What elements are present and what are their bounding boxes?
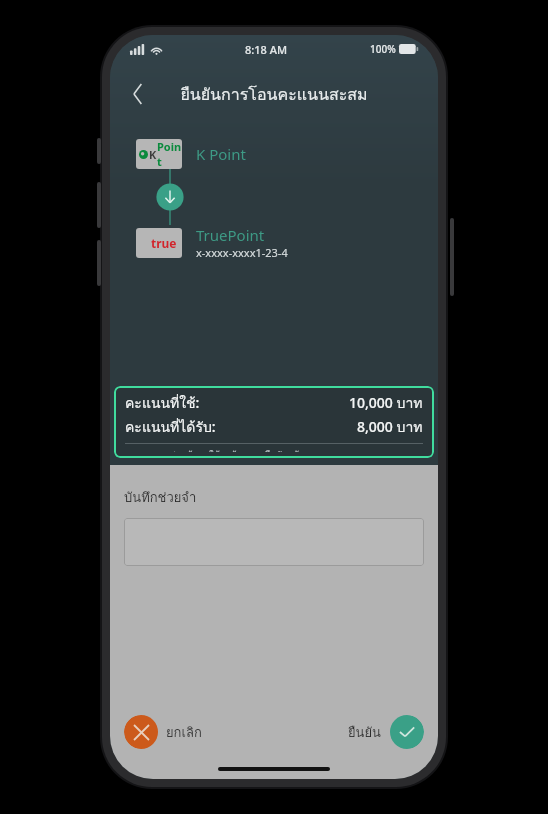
staticText: Point <box>157 139 182 169</box>
staticText: true <box>151 235 177 251</box>
staticText: 8:18 AM <box>245 42 288 57</box>
staticText: ยกเลิก <box>166 722 202 743</box>
staticText: 10,000 บาท <box>349 392 423 414</box>
button[interactable]: คะแนนที่ใช้: <box>114 386 434 458</box>
button[interactable]: Back <box>120 76 156 112</box>
staticText: 8,000 บาท <box>357 416 423 438</box>
staticText: กรุณาตรวจสอบข้อมูลให้ถูกต้อง หากยืนยันแล… <box>125 448 305 452</box>
button[interactable]: ยืนยัน <box>342 715 424 749</box>
staticText: บันทึกช่วยจำ <box>124 487 197 508</box>
staticText: ยืนยัน <box>348 722 382 743</box>
button[interactable]: ยกเลิก <box>124 715 208 749</box>
button[interactable] <box>124 518 424 566</box>
staticText: คะแนนที่ได้รับ: <box>125 416 216 438</box>
staticText: K Point <box>196 144 246 164</box>
staticText: K <box>149 147 157 162</box>
staticText: 100% <box>370 42 396 56</box>
staticText: x-xxxx-xxxx1-23-4 <box>196 245 288 260</box>
staticText: TruePoint <box>196 225 265 245</box>
staticText: คะแนนที่ใช้: <box>125 392 200 414</box>
staticText: ยืนยันการโอนคะแนนสะสม <box>180 82 368 107</box>
